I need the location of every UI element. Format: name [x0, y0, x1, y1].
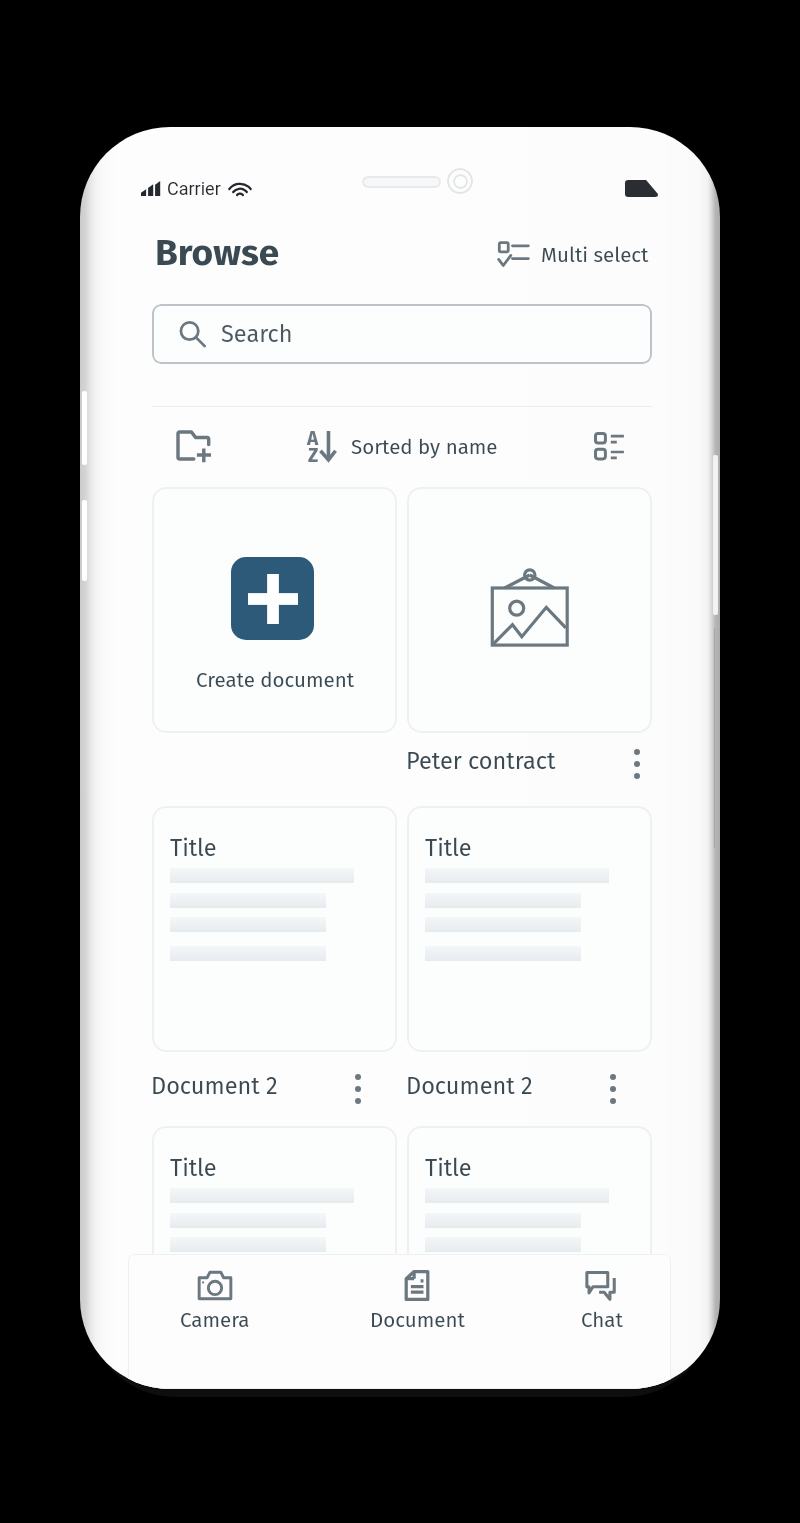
staticText: Z	[308, 444, 319, 467]
staticText: Create document	[196, 668, 355, 693]
button[interactable]: More options	[596, 1072, 630, 1106]
staticText: Document 2	[406, 1072, 533, 1100]
button[interactable]: Multi select	[495, 239, 695, 271]
button[interactable]: Title	[152, 1126, 397, 1372]
button[interactable]: Title	[407, 1126, 652, 1372]
staticText: Sorted by name	[351, 435, 498, 460]
button[interactable]	[407, 487, 652, 733]
button[interactable]: More options	[620, 747, 654, 781]
staticText: Chat	[581, 1308, 623, 1333]
button[interactable]: Create document	[152, 487, 397, 733]
staticText: Carrier	[167, 178, 221, 199]
button[interactable]: Document 2	[148, 1065, 378, 1113]
staticText: Search	[221, 320, 293, 348]
staticText: Title	[425, 834, 472, 862]
button[interactable]: Title	[407, 806, 652, 1052]
staticText: Multi select	[541, 243, 649, 268]
button[interactable]: Peter contract	[403, 740, 656, 788]
staticText: Camera	[180, 1308, 250, 1333]
staticText: A	[307, 427, 319, 450]
staticText: Title	[425, 1154, 472, 1182]
staticText: Document 2	[151, 1072, 278, 1100]
button[interactable]: More options	[341, 1072, 375, 1106]
button[interactable]: Browse	[155, 230, 280, 274]
staticText: Title	[170, 834, 217, 862]
button[interactable]: Chat	[532, 1270, 672, 1346]
button[interactable]: Document	[347, 1270, 487, 1346]
button[interactable]: A	[299, 423, 589, 471]
button[interactable]: Search	[152, 304, 652, 364]
button[interactable]: View options	[586, 424, 632, 470]
button[interactable]: Document 2	[403, 1065, 633, 1113]
staticText: Document	[370, 1308, 465, 1333]
staticText: Title	[170, 1154, 217, 1182]
staticText: Peter contract	[406, 747, 556, 775]
button[interactable]: Title	[152, 806, 397, 1052]
button[interactable]: New folder	[170, 424, 219, 470]
button[interactable]: Camera	[145, 1270, 285, 1346]
